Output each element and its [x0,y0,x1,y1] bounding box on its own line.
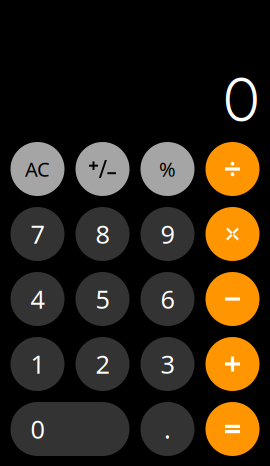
button[interactable]: Percent [140,142,194,196]
button[interactable]: 4 [10,272,64,326]
button[interactable]: 7 [10,207,64,261]
staticText: 6 [160,282,174,316]
button[interactable]: 6 [140,272,194,326]
button[interactable]: 9 [140,207,194,261]
button[interactable]: Equals [205,402,259,456]
button[interactable]: Toggle sign [75,142,129,196]
staticText: 1 [30,347,44,381]
staticText: 4 [30,282,44,316]
staticText: . [164,412,171,446]
staticText: 2 [95,347,109,381]
staticText: 3 [160,347,174,381]
button[interactable]: . [140,402,194,456]
button[interactable]: Zero [10,402,129,456]
button[interactable]: 3 [140,337,194,391]
button[interactable]: All Clear [10,142,64,196]
staticText: % [159,156,176,182]
staticText: AC [25,156,50,182]
button[interactable]: Divide [205,142,259,196]
staticText: 7 [30,217,44,251]
button[interactable]: 8 [75,207,129,261]
staticText: 0 [30,412,44,446]
button[interactable]: 1 [10,337,64,391]
staticText: 8 [95,217,109,251]
button[interactable]: Multiply [205,207,259,261]
staticText: 0 [223,63,259,136]
button[interactable]: 5 [75,272,129,326]
staticText: 5 [95,282,109,316]
staticText: 9 [160,217,174,251]
button[interactable]: 2 [75,337,129,391]
button[interactable]: Minus [205,272,259,326]
button[interactable]: Plus [205,337,259,391]
